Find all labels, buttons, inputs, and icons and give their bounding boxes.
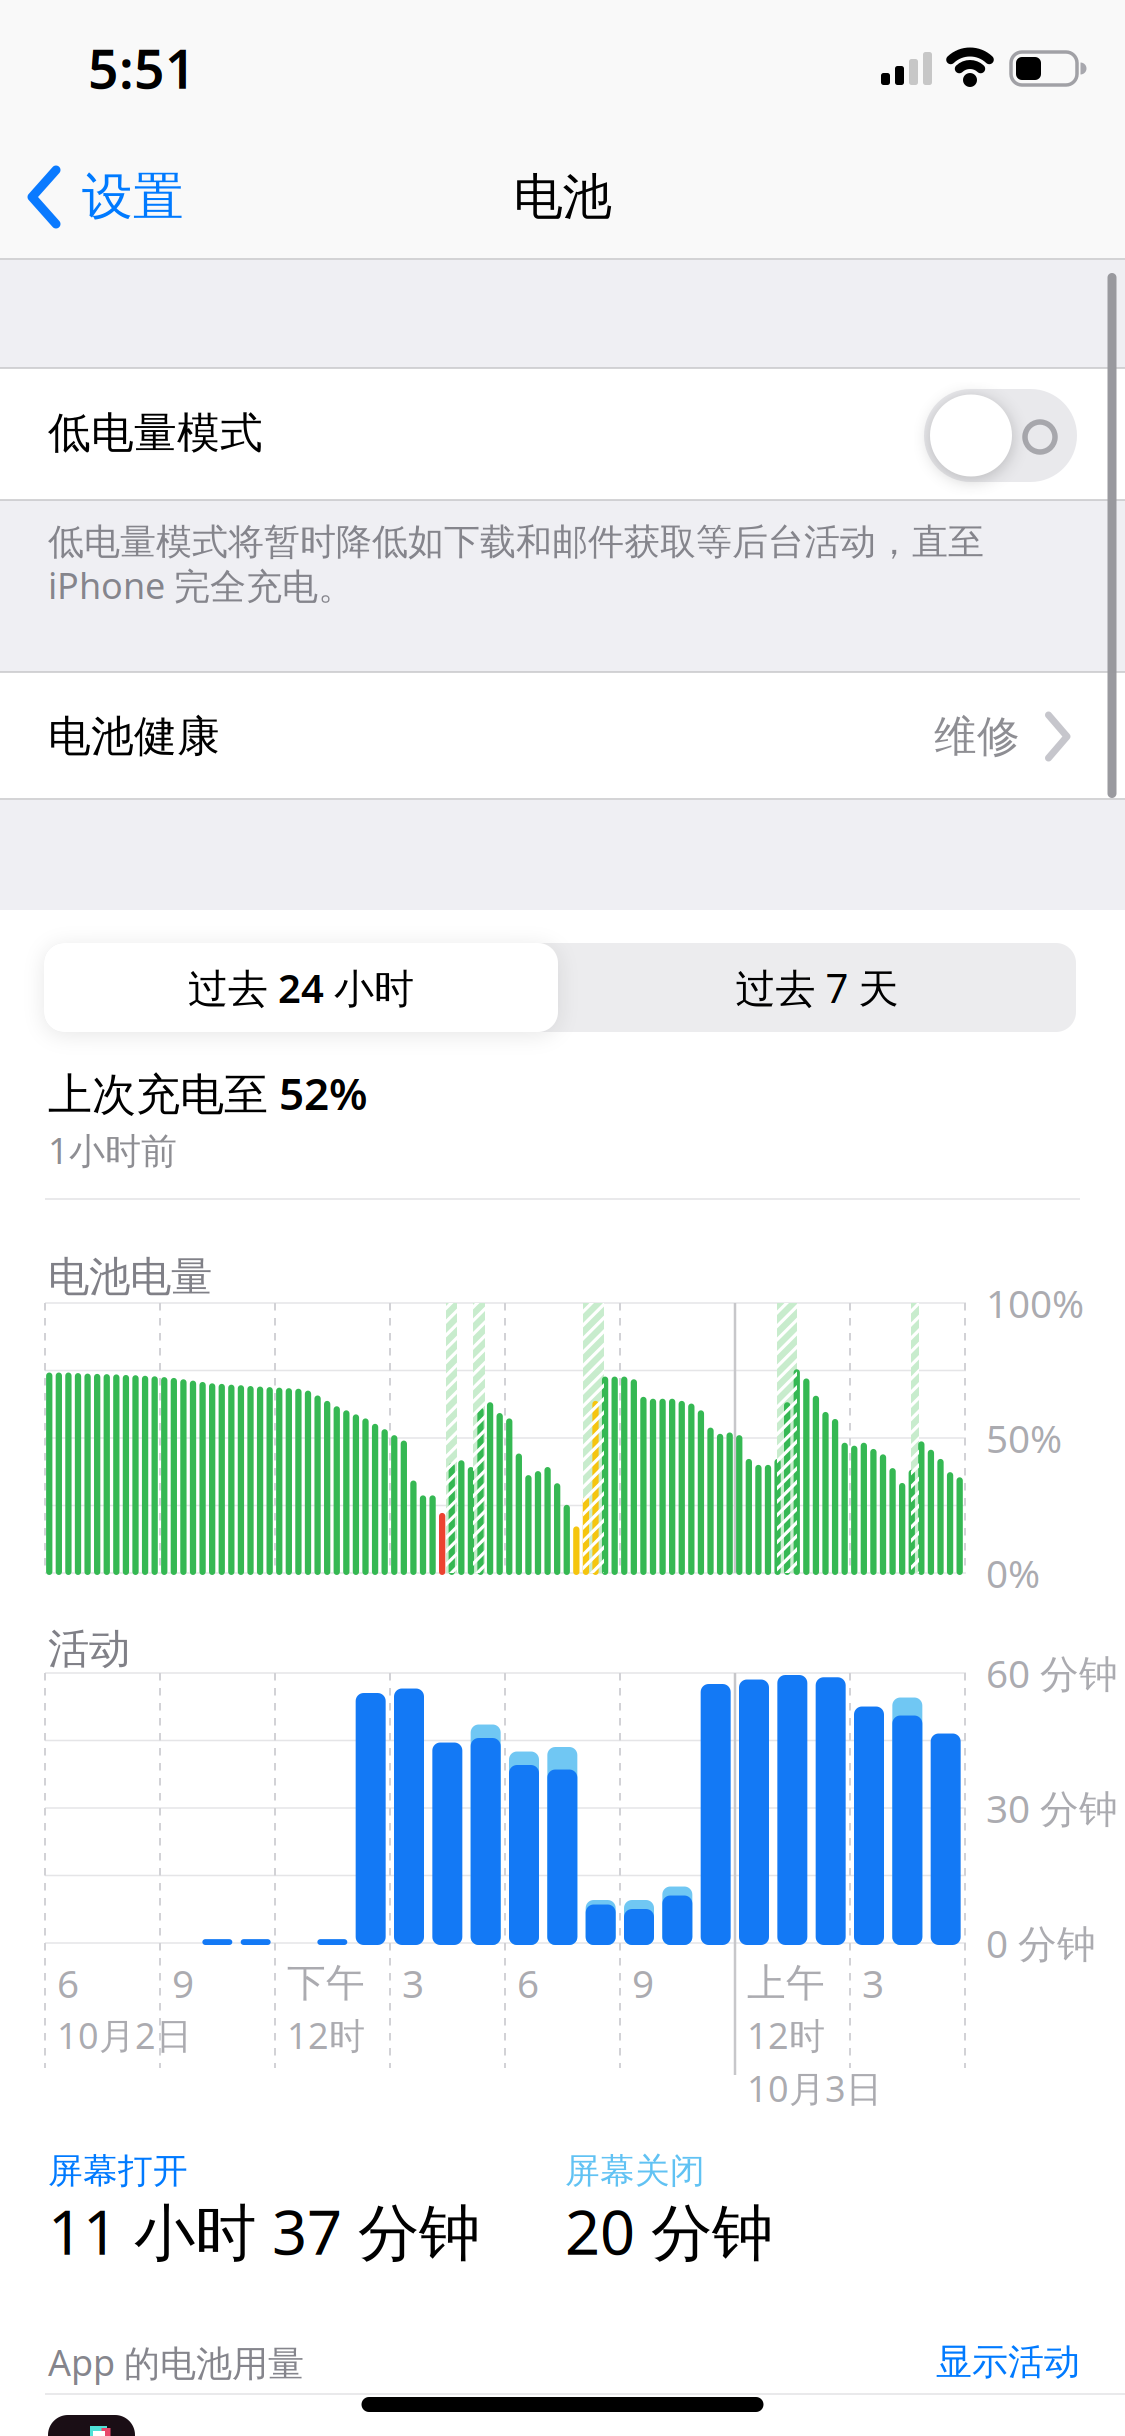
staticText: 9 — [172, 1957, 194, 2009]
staticText: 低电量模式 — [48, 407, 263, 459]
staticText: 11 小时 37 分钟 — [48, 2190, 480, 2272]
staticText: 3 — [862, 1957, 884, 2009]
staticText: 电池电量 — [48, 1252, 212, 1302]
staticText: 12时 — [287, 2011, 365, 2059]
staticText: 0 分钟 — [986, 1917, 1096, 1969]
button[interactable]: 设置 — [28, 152, 278, 242]
staticText: 10月3日 — [747, 2064, 882, 2112]
button[interactable]: App 电池用量 — [48, 2415, 135, 2436]
button[interactable]: 电池健康 — [0, 672, 1125, 799]
button[interactable]: 过去 7 天 — [558, 943, 1076, 1032]
staticText: 30 分钟 — [986, 1782, 1118, 1834]
staticText: 1小时前 — [48, 1126, 177, 1174]
button[interactable]: 过去 24 小时 — [44, 943, 558, 1032]
staticText: 3 — [402, 1957, 424, 2009]
staticText: 上次充电至 52% — [48, 1064, 368, 1122]
staticText: 下午 — [287, 1959, 365, 2007]
staticText: 9 — [632, 1957, 654, 2009]
staticText: iPhone 完全充电。 — [48, 561, 354, 609]
button[interactable]: 低电量模式 — [924, 389, 1077, 482]
staticText: 20 分钟 — [565, 2190, 773, 2272]
staticText: 过去 24 小时 — [188, 961, 414, 1014]
staticText: 过去 7 天 — [735, 961, 898, 1014]
staticText: 维修 — [934, 710, 1020, 763]
staticText: 12时 — [747, 2011, 825, 2059]
staticText: 上午 — [747, 1959, 825, 2007]
staticText: 低电量模式将暂时降低如下载和邮件获取等后台活动，直至 — [48, 520, 984, 564]
staticText: 50% — [986, 1412, 1062, 1464]
button[interactable]: 显示活动 — [680, 2327, 1080, 2397]
staticText: 活动 — [48, 1624, 130, 1674]
staticText: 5:51 — [88, 33, 196, 103]
staticText: 60 分钟 — [986, 1647, 1118, 1699]
staticText: 电池 — [513, 167, 611, 227]
staticText: 6 — [517, 1957, 539, 2009]
staticText: 显示活动 — [936, 2340, 1080, 2384]
staticText: 电池健康 — [48, 710, 220, 763]
staticText: 10月2日 — [57, 2011, 192, 2059]
staticText: 6 — [57, 1957, 79, 2009]
staticText: App 的电池用量 — [48, 2338, 304, 2386]
staticText: 屏幕关闭 — [565, 2150, 705, 2192]
staticText: 屏幕打开 — [48, 2150, 188, 2192]
staticText: 0% — [986, 1547, 1040, 1599]
staticText: 100% — [986, 1277, 1084, 1329]
staticText: 设置 — [82, 166, 184, 228]
